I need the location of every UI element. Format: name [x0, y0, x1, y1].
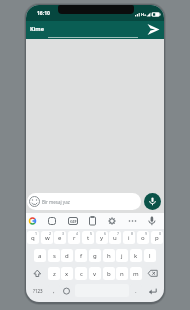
staticText: l — [149, 252, 151, 260]
staticText: m — [133, 270, 139, 278]
button[interactable]: l — [144, 249, 156, 262]
staticText: Bir mesaj yaz — [42, 199, 70, 205]
staticText: y — [100, 234, 104, 242]
button[interactable]: c — [75, 267, 87, 280]
staticText: s — [53, 252, 56, 260]
button[interactable]: , — [48, 284, 60, 297]
staticText: o — [141, 234, 145, 242]
button[interactable]: j — [116, 249, 128, 262]
staticText: z — [53, 270, 56, 278]
staticText: c — [80, 270, 83, 278]
button[interactable] — [144, 193, 161, 210]
button[interactable]: f — [75, 249, 87, 262]
staticText: 0 — [159, 231, 162, 236]
staticText: Kime — [30, 25, 44, 32]
staticText: 4 — [76, 231, 79, 236]
button[interactable]: y — [96, 231, 108, 244]
staticText: j — [121, 252, 123, 260]
button[interactable]: ?123 — [27, 284, 48, 297]
button[interactable]: r — [68, 231, 80, 244]
staticText: p — [155, 234, 159, 242]
staticText: H+ — [141, 12, 147, 17]
staticText: . — [135, 287, 137, 295]
staticText: h — [107, 252, 111, 260]
staticText: GIF — [70, 219, 77, 224]
staticText: 9 — [145, 231, 148, 236]
staticText: n — [120, 270, 124, 278]
staticText: v — [93, 270, 97, 278]
button[interactable] — [144, 22, 162, 38]
button[interactable]: x — [61, 267, 73, 280]
staticText: ?123 — [33, 288, 43, 294]
staticText: q — [31, 234, 35, 242]
button[interactable]: w — [41, 231, 53, 244]
staticText: 5 — [90, 231, 93, 236]
button[interactable]: i — [123, 231, 135, 244]
button[interactable]: h — [103, 249, 115, 262]
staticText: 7 — [117, 231, 120, 236]
staticText: x — [65, 270, 69, 278]
button[interactable]: u — [109, 231, 121, 244]
button[interactable]: z — [48, 267, 60, 280]
staticText: 16:10 — [37, 10, 50, 17]
staticText: 1 — [35, 231, 38, 236]
button[interactable]: p — [151, 231, 163, 244]
staticText: 6 — [104, 231, 107, 236]
button[interactable]: g — [89, 249, 101, 262]
button[interactable]: q — [27, 231, 39, 244]
staticText: , — [53, 287, 55, 295]
button[interactable]: . — [130, 284, 142, 297]
staticText: t — [87, 234, 90, 242]
button[interactable]: k — [130, 249, 142, 262]
staticText: w — [45, 234, 50, 242]
button[interactable]: s — [48, 249, 60, 262]
button[interactable]: o — [137, 231, 149, 244]
staticText: e — [58, 234, 62, 242]
button[interactable]: Bir mesaj yaz — [27, 193, 141, 210]
staticText: u — [113, 234, 117, 242]
staticText: 3 — [62, 231, 65, 236]
button[interactable]: e — [54, 231, 66, 244]
button[interactable]: b — [103, 267, 115, 280]
button[interactable]: n — [116, 267, 128, 280]
staticText: r — [73, 234, 76, 242]
staticText: f — [80, 252, 83, 260]
button[interactable]: t — [82, 231, 94, 244]
button[interactable]: v — [89, 267, 101, 280]
staticText: a — [38, 252, 42, 260]
button[interactable]: a — [34, 249, 46, 262]
staticText: 2 — [49, 231, 52, 236]
staticText: d — [65, 252, 69, 260]
button[interactable]: d — [61, 249, 73, 262]
staticText: g — [93, 252, 97, 260]
button[interactable]: m — [130, 267, 142, 280]
staticText: i — [128, 234, 130, 242]
staticText: k — [134, 252, 138, 260]
staticText: 8 — [131, 231, 134, 236]
staticText: b — [107, 270, 111, 278]
